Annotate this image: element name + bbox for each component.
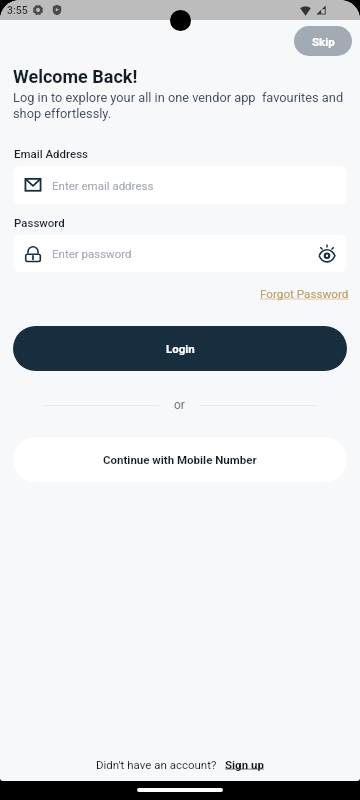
staticText: Enter email address [52,179,154,192]
staticText: or [174,398,185,412]
staticText: Email Address [14,147,88,160]
button[interactable]: Login [13,326,347,371]
button[interactable]: Forgot Password [260,287,349,301]
button[interactable]: Continue with Mobile Number [13,437,347,482]
button[interactable]: Enter password [13,235,347,272]
staticText: Skip [312,35,335,48]
staticText: Welcome Back! [13,66,138,87]
staticText: Password [14,216,65,229]
staticText: Didn't have an account? [96,758,217,771]
staticText: Login [166,342,195,355]
staticText: Enter password [52,247,132,260]
staticText: Continue with Mobile Number [103,453,257,466]
button[interactable]: Sign up [225,758,264,771]
staticText: 3:55 [7,4,28,16]
button[interactable]: Enter email address [13,166,347,204]
button[interactable]: Show password [318,245,336,263]
staticText: Log in to explore your all in one vendor… [13,90,344,121]
button[interactable]: Skip [294,26,352,56]
